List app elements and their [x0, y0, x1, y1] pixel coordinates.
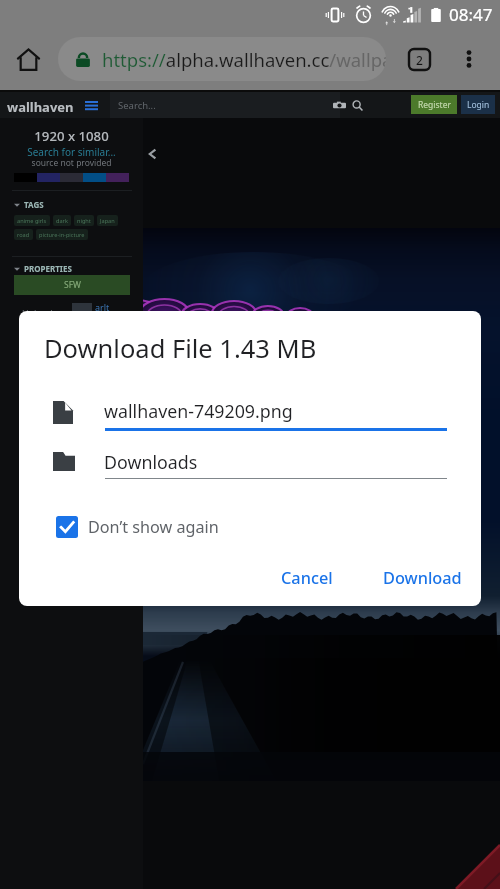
staticText: https://alpha.wallhaven.cc/wallpa: [102, 47, 386, 72]
button[interactable]: wallhaven: [7, 98, 74, 116]
button[interactable]: PROPERTIES: [14, 263, 72, 274]
button[interactable]: Menu: [85, 101, 98, 110]
staticText: Download File 1.43 MB: [44, 331, 317, 366]
staticText: Japan: [100, 217, 115, 225]
staticText: Login: [467, 99, 490, 111]
button[interactable]: Image search: [333, 100, 346, 111]
button[interactable]: Search for similar...: [0, 145, 143, 159]
button[interactable]: Register: [411, 95, 457, 114]
staticText: source not provided: [0, 157, 143, 169]
staticText: Don’t show again: [88, 516, 219, 538]
staticText: Uploader: [22, 307, 62, 319]
staticText: night: [77, 217, 91, 225]
staticText: 2: [416, 52, 423, 68]
staticText: anime girls: [17, 217, 47, 225]
staticText: Register: [418, 99, 451, 111]
button[interactable]: night: [74, 215, 94, 226]
button[interactable]: picture-in-picture: [36, 229, 88, 240]
staticText: Download: [383, 567, 462, 589]
staticText: Search...: [118, 99, 156, 112]
staticText: picture-in-picture: [39, 231, 85, 239]
button[interactable]: Japan: [97, 215, 118, 226]
button[interactable]: https://alpha.wallhaven.cc/wallpa: [58, 37, 386, 81]
button[interactable]: More options: [448, 38, 490, 80]
button[interactable]: TAGS: [14, 199, 44, 210]
button[interactable]: Cancel: [269, 557, 345, 599]
staticText: Cancel: [281, 567, 333, 589]
button[interactable]: Tabs: [398, 38, 440, 80]
button[interactable]: Login: [461, 95, 495, 114]
staticText: 08:47: [449, 3, 493, 26]
button[interactable]: dark: [53, 215, 71, 226]
button[interactable]: Search...: [110, 92, 340, 118]
button[interactable]: Don’t show again: [49, 510, 219, 544]
button[interactable]: Search: [352, 100, 363, 111]
staticText: TAGS: [24, 199, 44, 210]
button[interactable]: road: [14, 229, 33, 240]
staticText: arlt: [95, 301, 110, 313]
button[interactable]: Download: [371, 557, 474, 599]
staticText: 1920 x 1080: [0, 127, 143, 145]
button[interactable]: Home: [6, 37, 50, 81]
button[interactable]: anime girls: [14, 215, 50, 226]
staticText: Downloads: [104, 450, 198, 474]
staticText: dark: [56, 217, 68, 225]
staticText: PROPERTIES: [24, 263, 72, 274]
staticText: road: [17, 231, 30, 239]
button[interactable]: SFW: [14, 275, 130, 295]
staticText: wallhaven-749209.png: [104, 399, 293, 423]
staticText: SFW: [64, 279, 81, 291]
